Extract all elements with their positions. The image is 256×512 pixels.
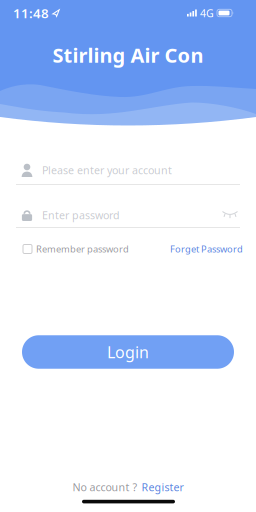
staticText: Stirling Air Con	[52, 42, 203, 68]
staticText: Register	[141, 480, 183, 494]
staticText: Login	[107, 341, 149, 363]
staticText: No account ?	[72, 480, 137, 494]
button[interactable]: Show password	[222, 210, 238, 219]
staticText: Remember password	[36, 243, 129, 255]
button[interactable]: No account ?	[72, 480, 183, 494]
staticText: Enter password	[42, 208, 120, 222]
staticText: 4G	[200, 6, 214, 20]
staticText: Please enter your account	[42, 163, 172, 177]
staticText: Forget Password	[170, 243, 243, 255]
button[interactable]: Login	[22, 335, 234, 369]
button[interactable]: Remember password	[23, 243, 129, 255]
staticText: 11:48	[13, 4, 49, 22]
button[interactable]: Forget Password	[170, 243, 243, 255]
